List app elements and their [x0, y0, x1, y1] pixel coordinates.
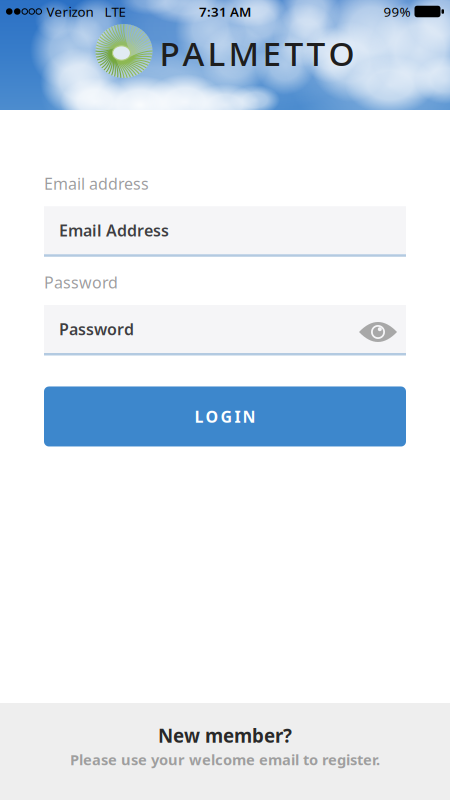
button[interactable]: L O G I N — [44, 386, 406, 446]
staticText: Password — [59, 318, 134, 340]
staticText: L O G I N — [194, 406, 255, 427]
staticText: New member? — [158, 723, 292, 748]
staticText: P A L M E T T O — [159, 31, 354, 75]
button[interactable]: Email Address — [44, 206, 406, 257]
staticText: 99% — [383, 3, 410, 20]
button[interactable]: Show password — [359, 315, 406, 343]
staticText: Please use your welcome email to registe… — [70, 750, 380, 769]
staticText: 7:31 AM — [199, 3, 251, 20]
staticText: LTE — [104, 3, 125, 20]
staticText: Verizon — [46, 3, 93, 20]
staticText: Email address — [44, 173, 149, 194]
button[interactable]: Password — [44, 305, 406, 355]
staticText: Email Address — [59, 220, 169, 241]
staticText: Password — [44, 272, 118, 293]
button[interactable]: New member? — [0, 703, 450, 800]
